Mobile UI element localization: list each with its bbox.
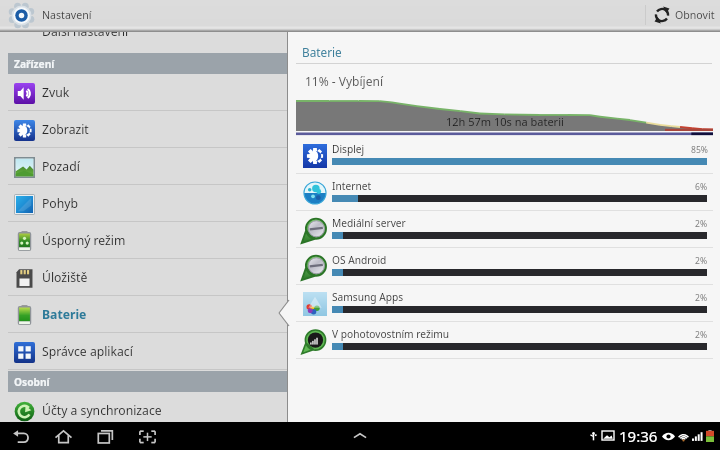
- staticText: Pohyb: [42, 195, 78, 212]
- button[interactable]: Mediální server: [289, 211, 720, 248]
- staticText: Baterie: [42, 306, 87, 323]
- button[interactable]: Pohyb: [0, 185, 288, 222]
- button[interactable]: Baterie: [0, 296, 288, 333]
- button[interactable]: V pohotovostním režimu: [289, 322, 720, 359]
- button[interactable]: Internet: [289, 174, 720, 211]
- button[interactable]: Back: [2, 422, 40, 450]
- staticText: 85%: [691, 144, 708, 156]
- staticText: 2%: [695, 292, 708, 304]
- staticText: Baterie: [302, 44, 342, 60]
- staticText: 12h 57m 10s na baterii: [446, 114, 564, 129]
- button[interactable]: Zobrazit: [0, 111, 288, 148]
- staticText: Zařízení: [14, 57, 55, 71]
- button[interactable]: Samsung Apps: [289, 285, 720, 322]
- staticText: Obnovit: [675, 8, 715, 22]
- button[interactable]: Další nastavení: [0, 13, 288, 50]
- staticText: Displej: [332, 142, 365, 156]
- staticText: Zobrazit: [42, 121, 89, 138]
- button[interactable]: Show navigation bar: [343, 422, 377, 450]
- staticText: Zvuk: [42, 84, 70, 101]
- staticText: Účty a synchronizace: [42, 402, 162, 419]
- staticText: 2%: [695, 329, 708, 341]
- button[interactable]: Úložiště: [0, 259, 288, 296]
- button[interactable]: Zvuk: [0, 74, 288, 111]
- button[interactable]: Displej: [289, 137, 720, 174]
- button[interactable]: Správce aplikací: [0, 333, 288, 370]
- staticText: Osobní: [14, 375, 50, 389]
- staticText: OS Android: [332, 253, 387, 267]
- staticText: Nastavení: [42, 8, 92, 22]
- button[interactable]: Úsporný režim: [0, 222, 288, 259]
- staticText: Samsung Apps: [332, 290, 404, 304]
- staticText: Pozadí: [42, 158, 80, 175]
- staticText: Další nastavení: [42, 23, 129, 40]
- button[interactable]: Účty a synchronizace: [0, 392, 288, 429]
- button[interactable]: OS Android: [289, 248, 720, 285]
- staticText: Úsporný režim: [42, 232, 126, 249]
- staticText: Úložiště: [42, 269, 88, 286]
- staticText: Internet: [332, 179, 372, 193]
- staticText: 2%: [695, 218, 708, 230]
- button[interactable]: Recent apps: [86, 422, 124, 450]
- staticText: Správce aplikací: [42, 343, 133, 360]
- staticText: 19:36: [619, 426, 658, 446]
- staticText: 11% - Vybíjení: [305, 73, 383, 89]
- staticText: Mediální server: [332, 216, 406, 230]
- staticText: V pohotovostním režimu: [332, 327, 450, 341]
- button[interactable]: Home: [44, 422, 82, 450]
- staticText: 2%: [695, 255, 708, 267]
- button[interactable]: Obnovit: [645, 0, 720, 30]
- button[interactable]: Nastavení: [9, 0, 92, 32]
- staticText: 6%: [695, 181, 708, 193]
- button[interactable]: Screen capture: [128, 422, 166, 450]
- button[interactable]: Pozadí: [0, 148, 288, 185]
